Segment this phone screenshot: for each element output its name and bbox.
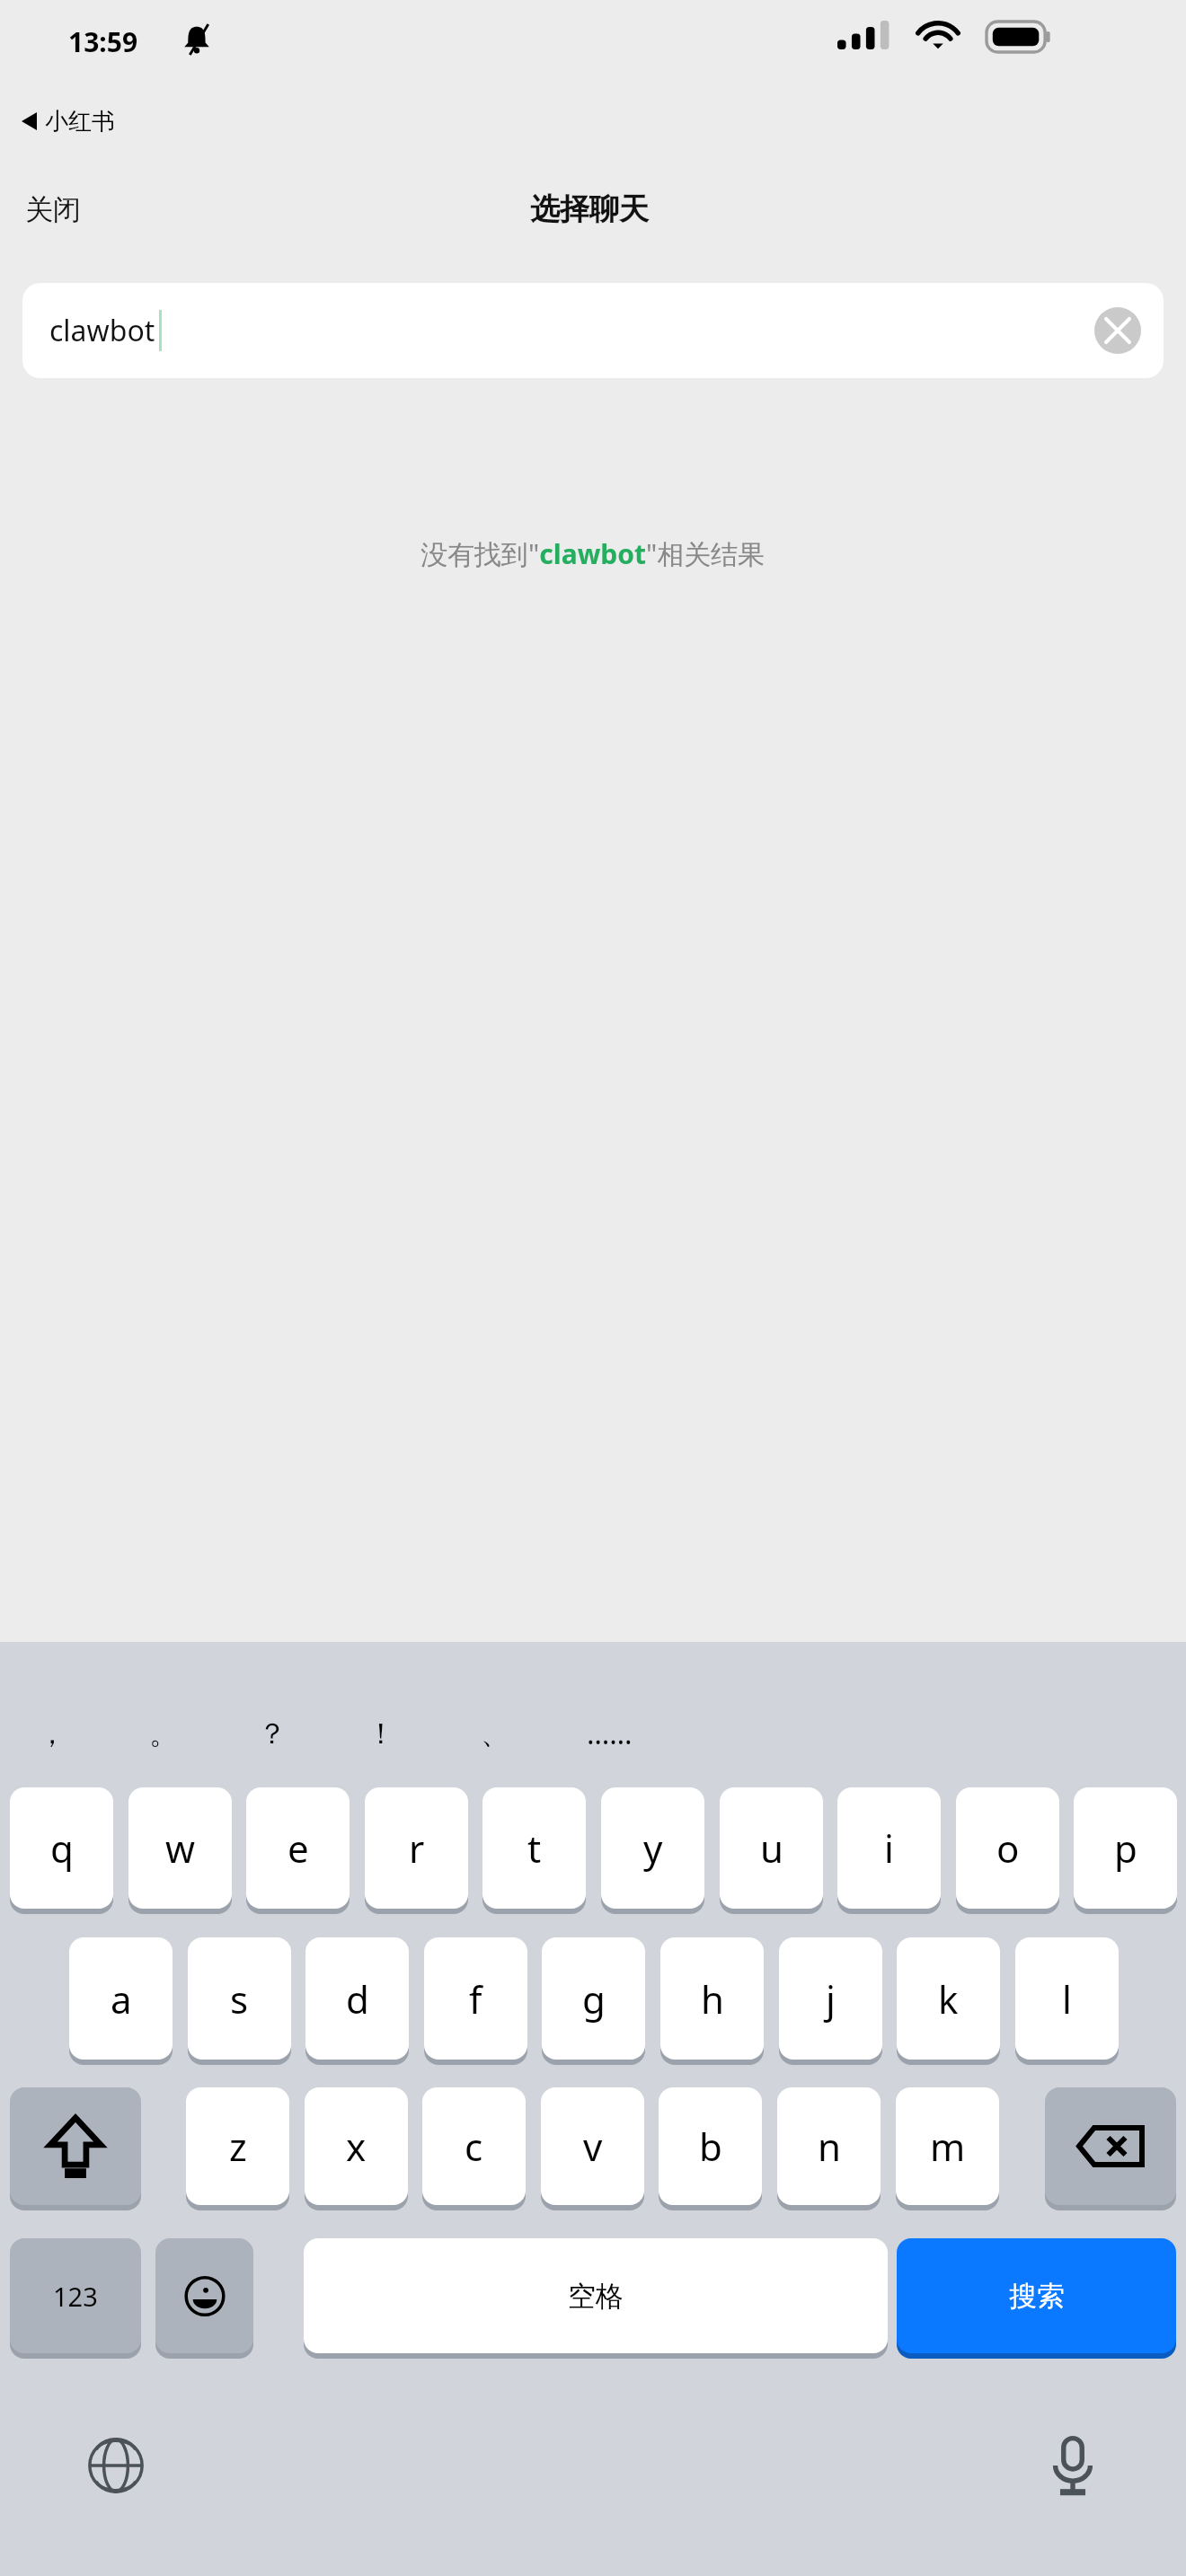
staticText: o (996, 1822, 1020, 1874)
staticText: 搜索 (1009, 2279, 1065, 2314)
staticText: 13:59 (68, 23, 138, 60)
staticText: 。 (149, 1716, 178, 1751)
staticText: clawbot (49, 311, 155, 350)
button[interactable]: s (188, 1937, 291, 2060)
button[interactable]: m (896, 2087, 999, 2205)
button[interactable]: n (777, 2087, 881, 2205)
staticText: m (930, 2121, 966, 2172)
staticText: i (884, 1822, 894, 1874)
staticText: c (465, 2121, 483, 2172)
button[interactable]: Shift (10, 2087, 141, 2205)
staticText: 没有找到"clawbot"相关结果 (420, 535, 766, 572)
button[interactable]: k (897, 1937, 1000, 2060)
button[interactable]: z (186, 2087, 289, 2205)
staticText: p (1114, 1822, 1137, 1874)
button[interactable]: …… (561, 1696, 658, 1771)
button[interactable]: 小红书 (13, 97, 124, 146)
staticText: w (165, 1822, 196, 1874)
button[interactable]: 、 (447, 1696, 544, 1771)
button[interactable]: Voice input (1022, 2418, 1123, 2513)
button[interactable]: g (542, 1937, 645, 2060)
staticText: d (346, 1973, 369, 2025)
button[interactable]: f (424, 1937, 527, 2060)
button[interactable]: 空格 (304, 2238, 888, 2353)
button[interactable]: w (128, 1787, 232, 1909)
staticText: t (527, 1822, 542, 1874)
staticText: 123 (53, 2279, 98, 2314)
button[interactable]: j (779, 1937, 882, 2060)
button[interactable]: d (305, 1937, 409, 2060)
button[interactable]: y (601, 1787, 704, 1909)
button[interactable]: u (720, 1787, 823, 1909)
button[interactable]: clawbot (22, 283, 1164, 378)
button[interactable]: ？ (224, 1696, 321, 1771)
staticText: k (938, 1973, 959, 2025)
staticText: u (760, 1822, 783, 1874)
button[interactable]: q (10, 1787, 113, 1909)
staticText: f (469, 1973, 482, 2025)
button[interactable]: Clear text (1093, 306, 1142, 355)
staticText: ， (38, 1716, 66, 1751)
staticText: g (582, 1973, 606, 2025)
staticText: s (230, 1973, 249, 2025)
staticText: q (50, 1822, 74, 1874)
staticText: y (643, 1822, 663, 1874)
staticText: h (701, 1973, 724, 2025)
staticText: ！ (367, 1716, 395, 1751)
staticText: 空格 (568, 2279, 624, 2314)
button[interactable]: c (422, 2087, 526, 2205)
staticText: z (229, 2121, 247, 2172)
staticText: 选择聊天 (530, 190, 649, 228)
staticText: n (818, 2121, 841, 2172)
button[interactable]: l (1015, 1937, 1119, 2060)
button[interactable]: Emoji (155, 2238, 253, 2353)
button[interactable]: ！ (332, 1696, 429, 1771)
button[interactable]: 关闭 (13, 183, 93, 236)
button[interactable]: a (69, 1937, 173, 2060)
button[interactable]: 。 (115, 1696, 212, 1771)
button[interactable]: r (365, 1787, 468, 1909)
staticText: e (288, 1822, 309, 1874)
button[interactable]: x (305, 2087, 408, 2205)
button[interactable]: ， (4, 1696, 101, 1771)
button[interactable]: Backspace (1045, 2087, 1176, 2205)
staticText: j (826, 1973, 836, 2025)
button[interactable]: 123 (10, 2238, 141, 2353)
staticText: x (346, 2121, 367, 2172)
staticText: a (111, 1973, 132, 2025)
staticText: …… (587, 1714, 633, 1753)
button[interactable]: 搜索 (897, 2238, 1176, 2353)
button[interactable]: p (1074, 1787, 1177, 1909)
staticText: 、 (481, 1716, 509, 1751)
button[interactable]: h (660, 1937, 764, 2060)
staticText: l (1062, 1973, 1072, 2025)
staticText: ？ (258, 1716, 287, 1751)
staticText: b (699, 2121, 722, 2172)
staticText: r (409, 1822, 425, 1874)
button[interactable]: v (541, 2087, 644, 2205)
staticText: v (583, 2121, 603, 2172)
button[interactable]: o (956, 1787, 1059, 1909)
button[interactable]: e (246, 1787, 350, 1909)
button[interactable]: Switch keyboard (65, 2418, 167, 2513)
button[interactable]: i (837, 1787, 941, 1909)
staticText: 关闭 (25, 192, 81, 227)
staticText: 小红书 (45, 107, 115, 137)
button[interactable]: t (482, 1787, 586, 1909)
button[interactable]: b (659, 2087, 762, 2205)
